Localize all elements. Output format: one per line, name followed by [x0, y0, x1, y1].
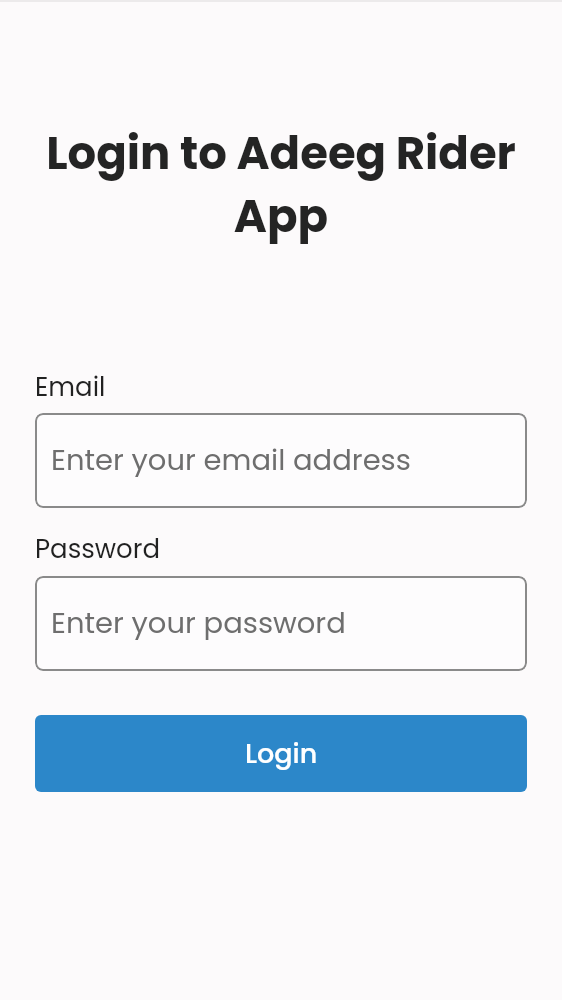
staticText: Enter your password [51, 603, 346, 644]
staticText: Enter your email address [51, 440, 411, 481]
button[interactable]: Enter your email address [35, 413, 527, 508]
button[interactable]: Login [35, 715, 527, 792]
button[interactable]: Enter your password [35, 576, 527, 671]
staticText: Login to Adeeg Rider App [35, 122, 527, 248]
staticText: Password [35, 531, 527, 567]
staticText: Login [245, 735, 318, 773]
staticText: Email [35, 369, 527, 405]
